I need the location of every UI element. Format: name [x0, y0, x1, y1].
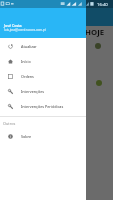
staticText: Sobre: [21, 134, 32, 139]
button[interactable]: Adicionar: [96, 80, 102, 86]
staticText: Atualizar: [21, 44, 37, 49]
button[interactable]: Início: [0, 54, 86, 69]
staticText: HOJE: [85, 27, 105, 38]
button[interactable]: Sobre: [0, 129, 86, 144]
staticText: Intervenções Periódicas: [21, 104, 64, 109]
staticText: 16:40: [97, 2, 108, 8]
staticText: Outros: [3, 121, 16, 126]
staticText: José Costa: [4, 23, 22, 28]
button[interactable]: Intervenções: [0, 84, 86, 99]
staticText: Intervenções: [21, 89, 45, 94]
staticText: Início: [21, 59, 31, 64]
button[interactable]: Atualizar: [0, 39, 86, 54]
staticText: luis.jose@construcoes.com.pt: [4, 28, 46, 32]
button[interactable]: Ordens: [0, 69, 86, 84]
staticText: Ordens: [21, 74, 34, 79]
button[interactable]: Intervenções Periódicas: [0, 99, 86, 114]
